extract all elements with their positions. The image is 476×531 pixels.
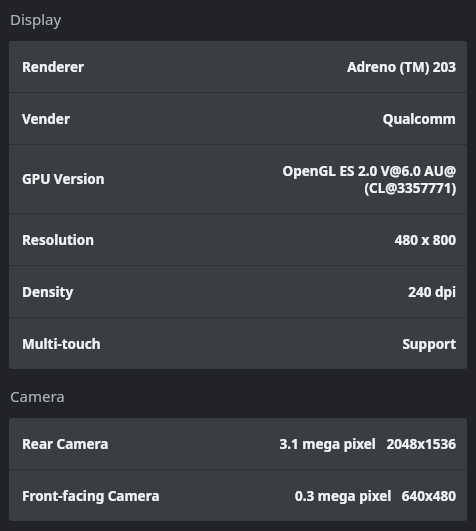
button[interactable]: GPU Version [9,145,467,213]
staticText: Vender [22,110,70,128]
button[interactable]: Front-facing Camera [9,470,467,521]
staticText: Display [10,9,62,29]
staticText: Resolution [22,231,95,249]
staticText: 0.3 mega pixel 640x480 [168,487,456,505]
staticText: OpenGL ES 2.0 V@6.0 AU@ (CL@3357771) [113,162,456,197]
staticText: Camera [10,386,65,406]
staticText: Multi-touch [22,335,101,353]
staticText: Adreno (TM) 203 [93,58,456,76]
staticText: Qualcomm [78,110,456,128]
staticText: Renderer [22,58,85,76]
button[interactable]: Density [9,266,467,317]
button[interactable]: Rear Camera [9,418,467,469]
button[interactable]: Vender [9,93,467,144]
staticText: Rear Camera [22,435,109,453]
staticText: 480 x 800 [103,231,456,249]
staticText: Front-facing Camera [22,487,160,505]
staticText: GPU Version [22,170,105,188]
staticText: Density [22,283,74,301]
button[interactable]: Resolution [9,214,467,265]
button[interactable]: Multi-touch [9,318,467,369]
staticText: Support [109,335,456,353]
button[interactable]: Renderer [9,41,467,92]
staticText: 3.1 mega pixel 2048x1536 [117,435,456,453]
staticText: 240 dpi [82,283,456,301]
